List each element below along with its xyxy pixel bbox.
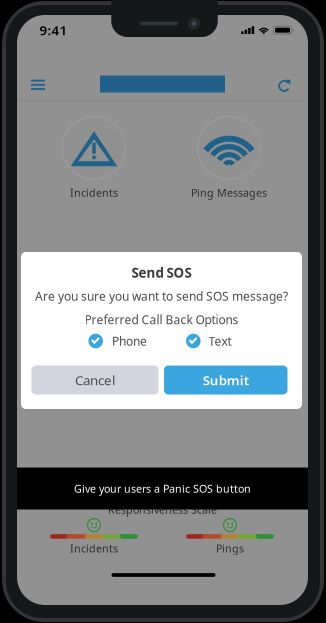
button[interactable]: Cancel	[31, 365, 158, 394]
staticText: Text	[209, 333, 232, 349]
staticText: Incidents	[70, 185, 118, 200]
staticText: Submit	[203, 371, 249, 389]
staticText: Incidents	[70, 541, 118, 555]
staticText: Ping Messages	[191, 185, 267, 200]
staticText: Pings	[216, 541, 244, 555]
staticText: Responsiveness Scale	[108, 502, 217, 517]
button[interactable]: Ping Messages	[191, 116, 267, 200]
staticText: Phone	[112, 333, 147, 349]
staticText: Send SOS	[131, 264, 191, 281]
button[interactable]: Submit	[164, 365, 287, 394]
staticText: Preferred Call Back Options	[84, 311, 238, 327]
staticText: Are you sure you want to send SOS messag…	[35, 288, 288, 304]
button[interactable]: Incidents	[62, 116, 125, 200]
staticText: Give your users a Panic SOS button	[74, 481, 251, 496]
button[interactable]: Text	[186, 333, 232, 349]
button[interactable]: Phone	[88, 333, 147, 349]
button[interactable]: Refresh	[269, 70, 299, 100]
button[interactable]: Menu	[23, 70, 53, 100]
staticText: Cancel	[75, 371, 115, 389]
staticText: 9:41	[39, 21, 67, 39]
